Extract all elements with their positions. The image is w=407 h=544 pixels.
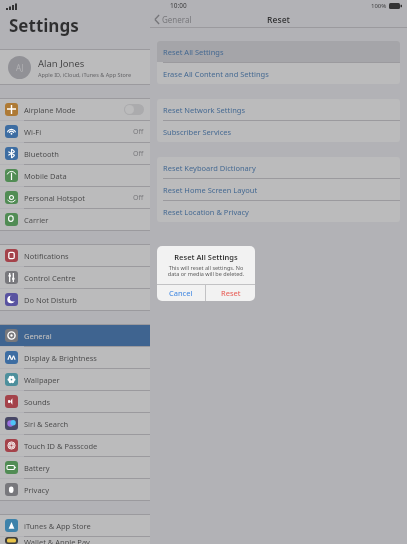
staticText: Off	[133, 149, 144, 159]
staticText: Notifications	[24, 251, 144, 261]
button[interactable]: Reset	[206, 285, 255, 301]
staticText: Display & Brightness	[24, 353, 144, 363]
staticText: Mobile Data	[24, 171, 144, 181]
button[interactable]: Wallet & Apple Pay	[0, 537, 150, 544]
staticText: Reset Home Screen Layout	[163, 185, 258, 195]
staticText: Airplane Mode	[24, 105, 124, 115]
staticText: This will reset all settings. No data or…	[164, 264, 248, 278]
staticText: AJ	[16, 62, 24, 73]
staticText: Reset Keyboard Dictionary	[163, 163, 256, 173]
staticText: Privacy	[24, 485, 144, 495]
button[interactable]: Sounds	[0, 391, 150, 412]
button[interactable]: Mobile Data	[0, 165, 150, 186]
button[interactable]: Subscriber Services	[157, 121, 400, 142]
staticText: Off	[133, 127, 144, 137]
staticText: Do Not Disturb	[24, 295, 144, 305]
staticText: Carrier	[24, 215, 144, 225]
button[interactable]: Reset Keyboard Dictionary	[157, 157, 400, 178]
button[interactable]: General	[150, 14, 196, 25]
button[interactable]: Do Not Disturb	[0, 289, 150, 310]
staticText: Reset Network Settings	[163, 105, 246, 115]
staticText: Off	[133, 193, 144, 203]
staticText: 10:00	[170, 1, 187, 10]
staticText: 100%	[371, 2, 387, 10]
staticText: Sounds	[24, 397, 144, 407]
staticText: Touch ID & Passcode	[24, 441, 144, 451]
staticText: Erase All Content and Settings	[163, 69, 269, 79]
button[interactable]: Reset Home Screen Layout	[157, 179, 400, 200]
staticText: Battery	[24, 463, 144, 473]
button[interactable]: Cancel	[157, 285, 205, 301]
button[interactable]: Personal Hotspot	[0, 187, 150, 208]
staticText: Wallet & Apple Pay	[24, 537, 144, 544]
button[interactable]: Reset Network Settings	[157, 99, 400, 120]
staticText: Reset Location & Privacy	[163, 207, 249, 217]
button[interactable]: Bluetooth	[0, 143, 150, 164]
staticText: Bluetooth	[24, 149, 133, 159]
button[interactable]: Touch ID & Passcode	[0, 435, 150, 456]
staticText: Wallpaper	[24, 375, 144, 385]
staticText: Alan Jones	[38, 57, 85, 70]
button[interactable]: Erase All Content and Settings	[157, 63, 400, 84]
staticText: Reset All Settings	[157, 252, 255, 262]
button[interactable]: iTunes & App Store	[0, 515, 150, 536]
button[interactable]: Control Centre	[0, 267, 150, 288]
staticText: Personal Hotspot	[24, 193, 133, 203]
staticText: Apple ID, iCloud, iTunes & App Store	[38, 71, 132, 78]
staticText: Reset	[267, 14, 291, 26]
button[interactable]: Reset All Settings	[157, 41, 400, 62]
staticText: Cancel	[169, 288, 193, 298]
button[interactable]: Reset Location & Privacy	[157, 201, 400, 222]
staticText: General	[162, 14, 192, 25]
staticText: Settings	[9, 14, 79, 37]
button[interactable]: Battery	[0, 457, 150, 478]
button[interactable]: Display & Brightness	[0, 347, 150, 368]
button[interactable]: Wi-Fi	[0, 121, 150, 142]
staticText: Wi-Fi	[24, 127, 133, 137]
staticText: Control Centre	[24, 273, 144, 283]
staticText: Subscriber Services	[163, 127, 232, 137]
button[interactable]: Privacy	[0, 479, 150, 500]
button[interactable]: Wallpaper	[0, 369, 150, 390]
staticText: General	[24, 331, 144, 341]
button[interactable]: AJ	[0, 50, 150, 84]
staticText: Siri & Search	[24, 419, 144, 429]
button[interactable]: Siri & Search	[0, 413, 150, 434]
button[interactable]: Carrier	[0, 209, 150, 230]
button[interactable]: General	[0, 325, 150, 346]
button[interactable]: Notifications	[0, 245, 150, 266]
staticText: Reset	[221, 288, 241, 298]
staticText: iTunes & App Store	[24, 521, 144, 531]
button[interactable]: Airplane Mode	[0, 99, 150, 120]
staticText: Reset All Settings	[163, 47, 224, 57]
